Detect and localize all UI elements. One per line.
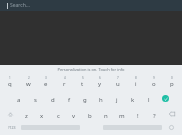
button[interactable]: 9 (145, 74, 163, 90)
staticText: x (40, 112, 44, 120)
button[interactable]: Personalization is on. Touch for info (0, 65, 182, 74)
staticText: o (152, 80, 156, 88)
staticText: y (98, 80, 102, 88)
staticText: Search... (10, 2, 30, 9)
button[interactable]: ? (146, 106, 162, 122)
button[interactable]: g (77, 90, 93, 106)
button[interactable]: z (19, 106, 34, 122)
staticText: r (63, 80, 66, 88)
button[interactable]: j (109, 90, 125, 106)
staticText: a (17, 96, 21, 104)
button[interactable]: Backspace (162, 106, 181, 122)
button[interactable]: 3 (37, 74, 55, 90)
staticText: f (68, 96, 71, 104)
staticText: u (116, 80, 120, 88)
staticText: g (83, 96, 87, 104)
staticText: ?123 (8, 125, 16, 130)
button[interactable]: 2 (19, 74, 37, 90)
button[interactable]: 8 (127, 74, 145, 90)
button[interactable]: b (82, 106, 98, 122)
button[interactable]: n (98, 106, 114, 122)
button[interactable]: Enter (157, 90, 173, 106)
staticText: d (51, 96, 55, 104)
staticText: w (26, 80, 31, 88)
staticText: q (8, 80, 12, 88)
staticText: v (72, 112, 76, 120)
button[interactable]: f (61, 90, 77, 106)
staticText: 8 (135, 76, 137, 80)
button[interactable]: c (50, 106, 66, 122)
staticText: 3 (45, 76, 47, 80)
staticText: 5 (82, 76, 84, 80)
staticText: 2 (28, 76, 30, 80)
staticText: 9 (153, 76, 155, 80)
button[interactable]: 1 (1, 74, 19, 90)
staticText: i (135, 80, 137, 88)
button[interactable]: 7 (109, 74, 127, 90)
staticText: 4 (64, 76, 66, 80)
button[interactable]: h (93, 90, 109, 106)
staticText: k (131, 96, 135, 104)
button[interactable]: a (10, 90, 27, 106)
staticText: z (25, 112, 28, 120)
button[interactable]: x (34, 106, 50, 122)
staticText: m (119, 112, 125, 120)
button[interactable]: Search... (0, 0, 182, 11)
button[interactable]: v (66, 106, 82, 122)
staticText: s (34, 96, 37, 104)
staticText: 0 (171, 76, 173, 80)
button[interactable]: d (44, 90, 61, 106)
staticText: n (104, 112, 108, 120)
button[interactable]: m (114, 106, 130, 122)
button[interactable]: Shift (1, 106, 19, 122)
staticText: 1 (9, 76, 11, 80)
staticText: l (148, 96, 150, 104)
button[interactable]: ?123 (2, 122, 21, 133)
staticText: p (170, 80, 174, 88)
button[interactable]: k (125, 90, 141, 106)
staticText: 7 (117, 76, 119, 80)
staticText: Personalization is on. Touch for info (57, 67, 125, 72)
button[interactable]: l (141, 90, 157, 106)
staticText: t (81, 80, 84, 88)
button[interactable]: 4 (55, 74, 73, 90)
button[interactable]: Emoji (162, 122, 180, 133)
staticText: c (57, 112, 60, 120)
button[interactable]: 0 (163, 74, 181, 90)
button[interactable]: ! (130, 106, 146, 122)
button[interactable]: 6 (91, 74, 109, 90)
staticText: ? (153, 112, 156, 120)
staticText: b (88, 112, 92, 120)
button[interactable]: s (27, 90, 44, 106)
staticText: ! (137, 112, 139, 120)
staticText: j (116, 96, 118, 104)
staticText: 6 (99, 76, 101, 80)
staticText: h (99, 96, 103, 104)
staticText: e (44, 80, 48, 88)
button[interactable]: 5 (73, 74, 91, 90)
